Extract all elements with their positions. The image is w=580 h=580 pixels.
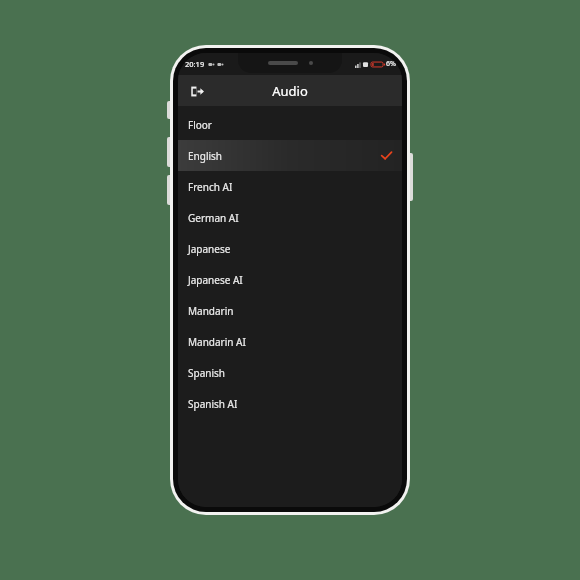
staticText: Mandarin bbox=[188, 304, 234, 318]
staticText: Floor bbox=[188, 118, 212, 132]
staticText: 20:19 bbox=[185, 59, 205, 69]
button[interactable]: German AI bbox=[178, 202, 402, 233]
staticText: Audio bbox=[272, 82, 308, 100]
button[interactable]: French AI bbox=[178, 171, 402, 202]
staticText: German AI bbox=[188, 211, 239, 225]
button[interactable]: Mandarin bbox=[178, 295, 402, 326]
button[interactable]: Japanese bbox=[178, 233, 402, 264]
button[interactable]: Floor bbox=[178, 109, 402, 140]
button[interactable]: Spanish bbox=[178, 357, 402, 388]
staticText: Mandarin AI bbox=[188, 335, 246, 349]
button[interactable]: Japanese AI bbox=[178, 264, 402, 295]
button[interactable]: Spanish AI bbox=[178, 388, 402, 419]
button[interactable]: Mandarin AI bbox=[178, 326, 402, 357]
button[interactable]: Exit bbox=[184, 78, 210, 104]
staticText: Japanese bbox=[188, 242, 231, 256]
staticText: English bbox=[188, 149, 223, 163]
staticText: French AI bbox=[188, 180, 233, 194]
button[interactable]: English bbox=[178, 140, 402, 171]
staticText: Spanish AI bbox=[188, 397, 238, 411]
staticText: Spanish bbox=[188, 366, 225, 380]
staticText: Japanese AI bbox=[188, 273, 243, 287]
staticText: 6% bbox=[386, 59, 396, 69]
